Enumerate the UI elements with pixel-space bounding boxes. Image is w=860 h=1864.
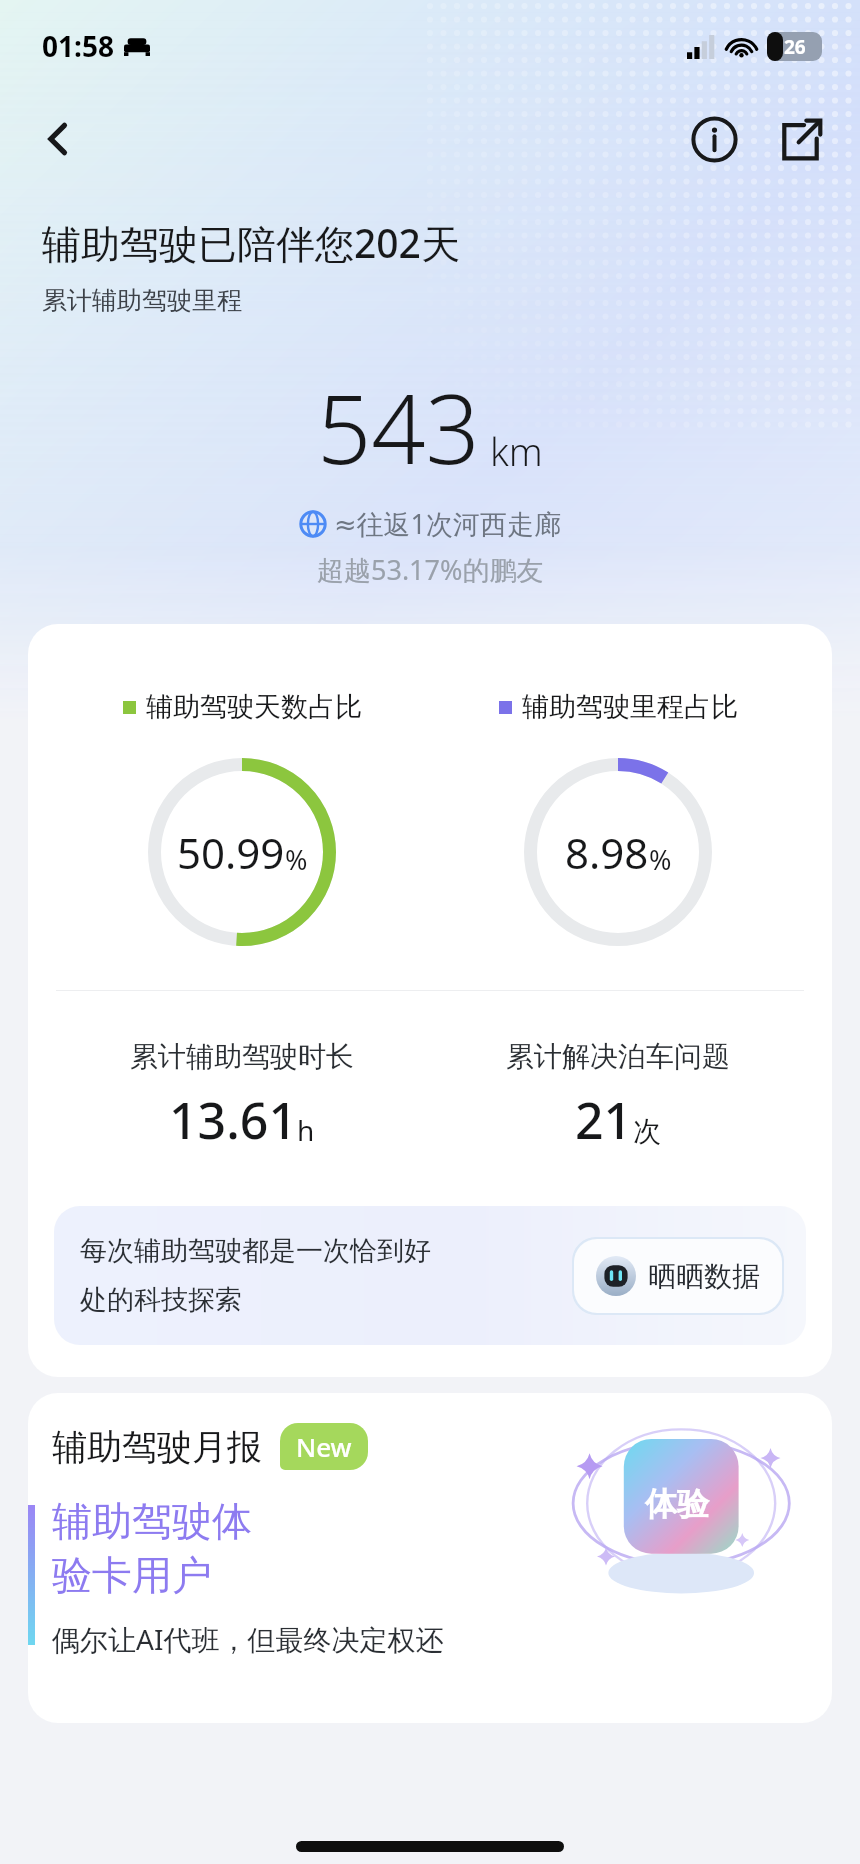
staticText: New: [296, 1429, 352, 1464]
staticText: km: [490, 425, 543, 477]
staticText: 验卡用户: [52, 1550, 212, 1600]
staticText: 累计辅助驾驶时长: [130, 1039, 354, 1074]
staticText: 处的科技探索: [80, 1283, 242, 1317]
staticText: 辅助驾驶已陪伴您202天: [42, 216, 460, 269]
staticText: 偶尔让AI代班，但最终决定权还: [52, 1620, 444, 1658]
button[interactable]: Share: [768, 107, 832, 171]
button[interactable]: Back: [26, 107, 90, 171]
staticText: 超越53.17%的鹏友: [317, 551, 544, 588]
staticText: 26: [784, 34, 806, 60]
staticText: 50.99: [177, 824, 285, 881]
button[interactable]: 晒晒数据: [574, 1239, 782, 1313]
button[interactable]: Info: [682, 107, 746, 171]
staticText: 累计解决泊车问题: [506, 1039, 730, 1074]
staticText: 每次辅助驾驶都是一次恰到好: [80, 1234, 431, 1268]
staticText: 辅助驾驶里程占比: [522, 690, 738, 724]
staticText: 晒晒数据: [648, 1259, 760, 1294]
staticText: 辅助驾驶体: [52, 1496, 252, 1546]
staticText: 13.61: [169, 1086, 297, 1154]
staticText: 8.98: [565, 824, 649, 881]
staticText: 辅助驾驶天数占比: [146, 690, 362, 724]
staticText: ≈往返1次河西走廊: [334, 505, 562, 542]
staticText: %: [649, 841, 672, 878]
staticText: 543: [317, 362, 480, 491]
staticText: 累计辅助驾驶里程: [42, 285, 242, 316]
staticText: %: [285, 841, 308, 878]
staticText: 次: [633, 1114, 661, 1149]
staticText: h: [297, 1111, 315, 1149]
staticText: 辅助驾驶月报: [52, 1425, 262, 1469]
staticText: 01:58: [42, 27, 114, 65]
staticText: 体验: [645, 1484, 709, 1524]
staticText: 21: [575, 1086, 633, 1154]
